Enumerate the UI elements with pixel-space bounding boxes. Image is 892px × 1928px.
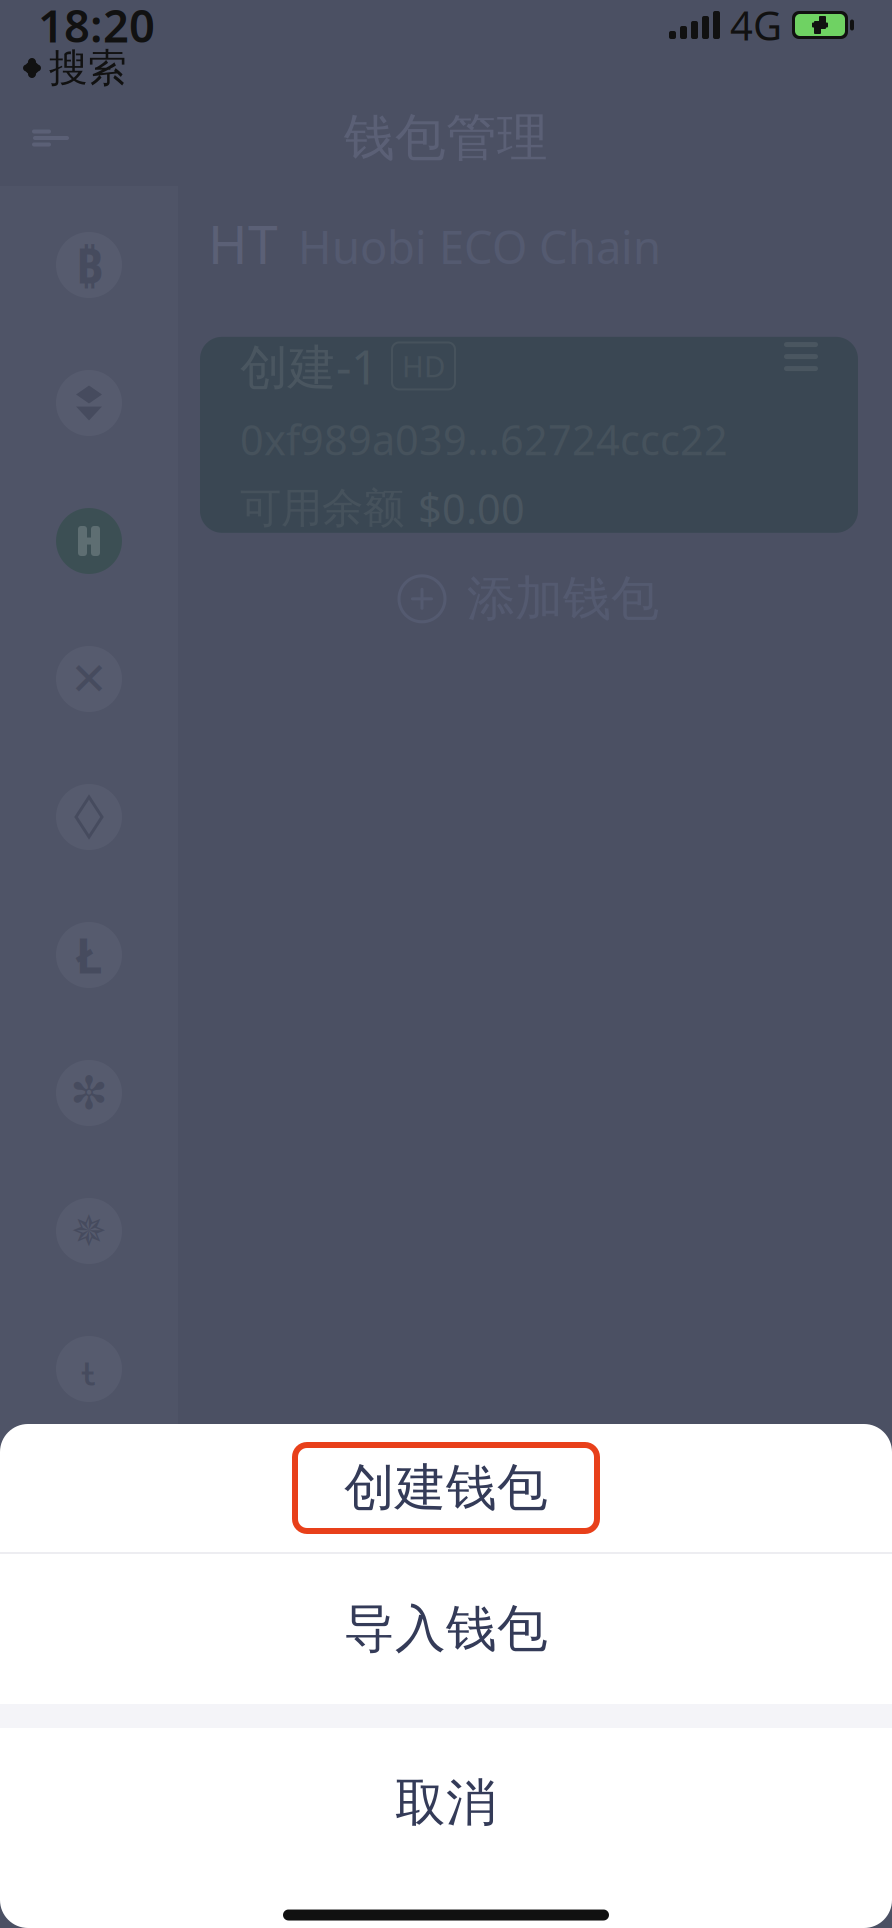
staticText: Ł [75, 923, 102, 987]
staticText: ₿ [75, 233, 102, 297]
staticText: 0xf989a039…62724ccc22 [240, 412, 728, 467]
button[interactable]: 创建-1 [200, 337, 858, 533]
button[interactable]: 区块链 1 [39, 208, 139, 322]
staticText: Huobi ECO Chain [298, 216, 661, 277]
button[interactable]: 区块链 5 [39, 760, 139, 874]
staticText: ✕ [70, 653, 108, 705]
staticText: 钱包管理 [344, 107, 548, 169]
staticText: HT [208, 208, 278, 279]
staticText: 18:20 [38, 0, 155, 55]
staticText: ᵼ [81, 1341, 96, 1397]
button[interactable]: 区块链 9 [39, 1312, 139, 1426]
button[interactable]: 取消 [0, 1728, 892, 1878]
staticText: 4G [730, 0, 782, 51]
staticText: ✵ [71, 1207, 107, 1255]
button[interactable]: 区块链 4 [39, 622, 139, 736]
staticText: 搜索 [49, 44, 127, 92]
staticText: 导入钱包 [344, 1598, 548, 1660]
button[interactable]: 创建钱包 [0, 1424, 892, 1552]
staticText: HD [402, 346, 445, 385]
button[interactable]: 导入钱包 [0, 1554, 892, 1704]
staticText: 创建钱包 [344, 1457, 548, 1519]
staticText: 取消 [395, 1772, 497, 1834]
staticText: 可用余额 [240, 483, 404, 534]
staticText: 创建-1 [240, 334, 378, 398]
button[interactable]: 区块链 2 [39, 346, 139, 460]
staticText: ✼ [70, 1067, 108, 1119]
button[interactable]: 区块链 7 [39, 1036, 139, 1150]
staticText: 添加钱包 [467, 569, 659, 628]
button[interactable]: 区块链 8 [39, 1174, 139, 1288]
staticText: $0.00 [418, 481, 525, 536]
button[interactable]: 返回 [14, 101, 88, 175]
button[interactable]: 区块链 6 [39, 898, 139, 1012]
button[interactable]: 区块链 3 [39, 484, 139, 598]
